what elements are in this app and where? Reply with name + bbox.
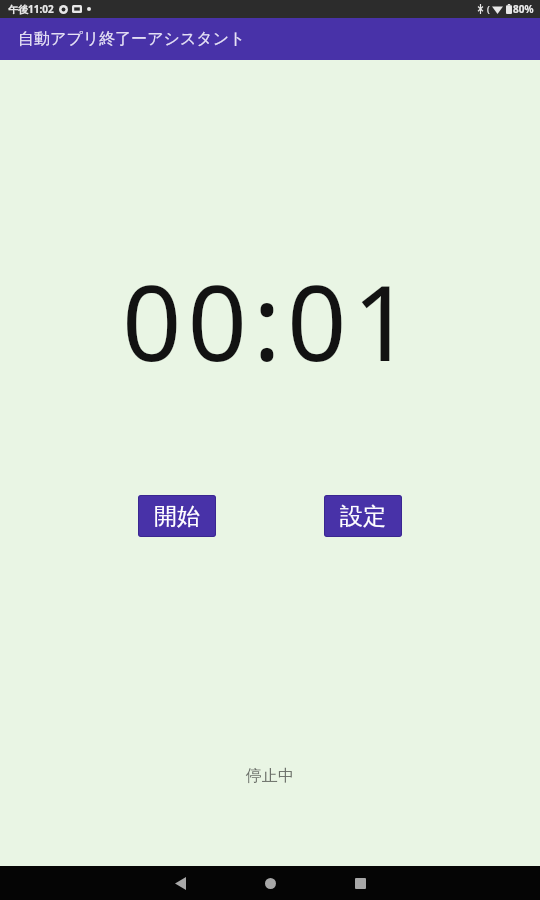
- staticText: 設定: [340, 502, 386, 531]
- button[interactable]: 設定: [324, 495, 402, 537]
- button[interactable]: Home: [235, 866, 305, 900]
- staticText: 00:01: [122, 250, 418, 392]
- staticText: 開始: [154, 502, 200, 531]
- button[interactable]: 開始: [138, 495, 216, 537]
- staticText: (: [487, 3, 490, 15]
- staticText: 自動アプリ終了ーアシスタント: [18, 29, 246, 49]
- button[interactable]: Recents: [325, 866, 395, 900]
- staticText: 80%: [513, 2, 534, 16]
- staticText: 午後11:02: [8, 2, 54, 16]
- button[interactable]: Back: [145, 866, 215, 900]
- staticText: 停止中: [246, 766, 294, 786]
